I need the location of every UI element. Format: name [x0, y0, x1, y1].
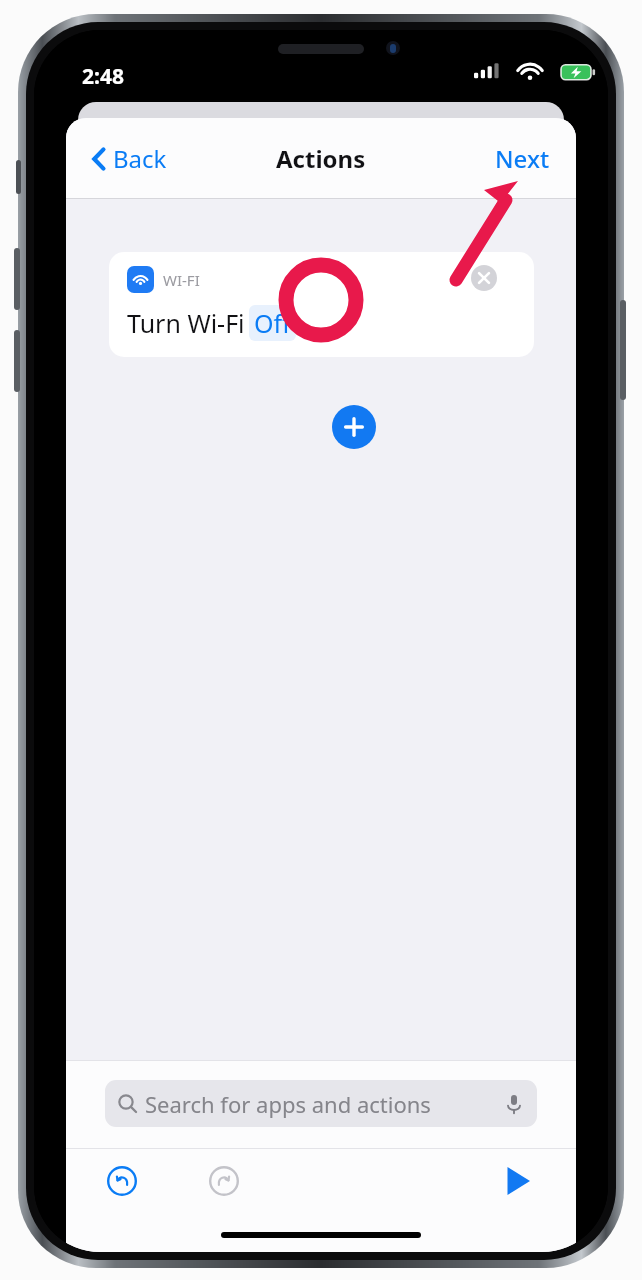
- button[interactable]: WI-FI: [109, 252, 534, 357]
- staticText: Back: [113, 142, 167, 175]
- button[interactable]: Undo: [99, 1158, 145, 1204]
- staticText: Turn Wi-Fi: [127, 306, 245, 340]
- button[interactable]: Search for apps and actions: [105, 1080, 537, 1127]
- staticText: Off: [254, 306, 291, 340]
- staticText: WI-FI: [163, 270, 200, 290]
- button[interactable]: Add action: [332, 405, 376, 449]
- staticText: Actions: [276, 142, 366, 175]
- button[interactable]: Run shortcut: [494, 1158, 540, 1204]
- staticText: Search for apps and actions: [145, 1089, 431, 1119]
- button[interactable]: Back: [86, 134, 173, 183]
- staticText: Next: [495, 142, 550, 175]
- button[interactable]: Redo: [201, 1158, 247, 1204]
- button[interactable]: Remove action: [464, 258, 504, 298]
- button[interactable]: Next: [489, 134, 556, 183]
- staticText: 2:48: [82, 62, 124, 91]
